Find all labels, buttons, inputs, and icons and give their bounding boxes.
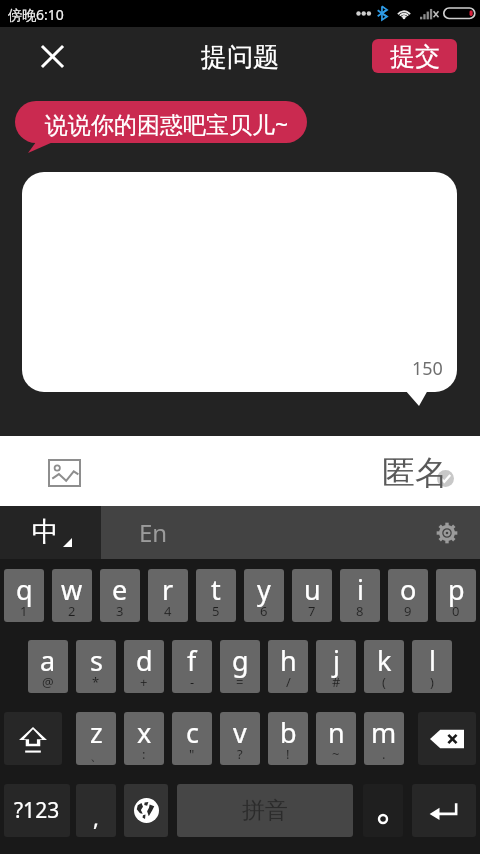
- staticText: 0: [452, 602, 460, 620]
- button[interactable]: Keyboard settings: [436, 522, 458, 544]
- button[interactable]: b: [268, 712, 308, 765]
- staticText: 6: [260, 602, 268, 620]
- button[interactable]: d: [124, 640, 164, 693]
- button[interactable]: k: [364, 640, 404, 693]
- button[interactable]: n: [316, 712, 356, 765]
- button[interactable]: Switch language: [124, 784, 168, 837]
- staticText: x: [137, 714, 152, 751]
- staticText: ?: [237, 745, 243, 763]
- staticText: h: [280, 642, 297, 679]
- staticText: r: [162, 571, 174, 608]
- staticText: 拼音: [242, 796, 288, 825]
- button[interactable]: [363, 784, 403, 837]
- staticText: i: [357, 571, 364, 608]
- staticText: !: [286, 745, 290, 763]
- staticText: ): [430, 673, 434, 691]
- staticText: 说说你的困惑吧宝贝儿~: [45, 108, 289, 139]
- button[interactable]: ,: [76, 784, 116, 837]
- button[interactable]: 中: [0, 506, 101, 559]
- button[interactable]: o: [388, 569, 428, 622]
- staticText: u: [304, 571, 321, 608]
- button[interactable]: i: [340, 569, 380, 622]
- staticText: c: [186, 714, 199, 751]
- staticText: ": [189, 745, 195, 763]
- staticText: p: [448, 571, 465, 608]
- staticText: t: [211, 571, 221, 608]
- staticText: 8: [356, 602, 364, 620]
- staticText: v: [233, 714, 247, 751]
- button[interactable]: z: [76, 712, 116, 765]
- staticText: #: [332, 673, 341, 691]
- staticText: d: [136, 642, 153, 679]
- staticText: g: [232, 642, 249, 679]
- button[interactable]: p: [436, 569, 476, 622]
- staticText: ,: [93, 802, 99, 832]
- button[interactable]: f: [172, 640, 212, 693]
- button[interactable]: Add image: [48, 459, 81, 487]
- staticText: =: [236, 673, 244, 691]
- button[interactable]: r: [148, 569, 188, 622]
- staticText: 3: [116, 602, 124, 620]
- button[interactable]: w: [52, 569, 92, 622]
- staticText: 9: [404, 602, 412, 620]
- button[interactable]: j: [316, 640, 356, 693]
- staticText: y: [257, 571, 271, 608]
- staticText: e: [112, 571, 128, 608]
- staticText: n: [328, 714, 345, 751]
- staticText: m: [371, 714, 397, 751]
- staticText: 傍晚6:10: [8, 5, 64, 24]
- button[interactable]: Shift: [4, 712, 62, 765]
- button[interactable]: En: [101, 506, 480, 559]
- button[interactable]: 提交: [372, 39, 457, 73]
- button[interactable]: e: [100, 569, 140, 622]
- staticText: @: [42, 673, 54, 691]
- button[interactable]: x: [124, 712, 164, 765]
- staticText: 提问题: [201, 41, 279, 74]
- button[interactable]: t: [196, 569, 236, 622]
- staticText: 7: [308, 602, 316, 620]
- button[interactable]: h: [268, 640, 308, 693]
- staticText: q: [16, 571, 33, 608]
- staticText: /: [286, 673, 291, 691]
- staticText: w: [61, 571, 83, 608]
- staticText: ?123: [14, 796, 60, 825]
- staticText: o: [400, 571, 417, 608]
- button[interactable]: Backspace: [418, 712, 476, 765]
- button[interactable]: Enter: [412, 784, 476, 837]
- button[interactable]: a: [28, 640, 68, 693]
- staticText: ~: [332, 745, 340, 763]
- staticText: +: [140, 673, 148, 691]
- button[interactable]: v: [220, 712, 260, 765]
- staticText: 、: [90, 747, 103, 763]
- staticText: En: [139, 516, 168, 549]
- staticText: 150: [412, 356, 443, 381]
- staticText: a: [40, 642, 56, 679]
- staticText: 2: [68, 602, 76, 620]
- staticText: *: [92, 673, 100, 691]
- button[interactable]: c: [172, 712, 212, 765]
- button[interactable]: s: [76, 640, 116, 693]
- staticText: 4: [164, 602, 172, 620]
- button[interactable]: ?123: [4, 784, 70, 837]
- staticText: 5: [212, 602, 220, 620]
- staticText: 匿名: [382, 452, 448, 494]
- staticText: 提交: [390, 41, 440, 72]
- button[interactable]: g: [220, 640, 260, 693]
- button[interactable]: y: [244, 569, 284, 622]
- button[interactable]: u: [292, 569, 332, 622]
- button[interactable]: 匿名: [382, 450, 460, 494]
- staticText: :: [142, 745, 146, 763]
- button[interactable]: q: [4, 569, 44, 622]
- staticText: z: [90, 714, 103, 751]
- staticText: -: [190, 673, 195, 691]
- staticText: 1: [20, 602, 28, 620]
- staticText: l: [429, 642, 436, 679]
- staticText: k: [377, 642, 392, 679]
- button[interactable]: Close: [36, 40, 69, 73]
- button[interactable]: m: [364, 712, 404, 765]
- staticText: s: [90, 642, 103, 679]
- staticText: .: [382, 745, 386, 763]
- staticText: f: [187, 642, 197, 679]
- button[interactable]: 拼音: [177, 784, 353, 837]
- button[interactable]: l: [412, 640, 452, 693]
